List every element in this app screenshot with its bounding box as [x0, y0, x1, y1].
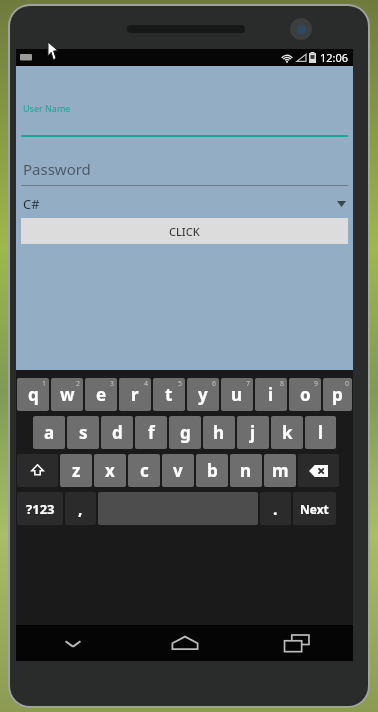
button[interactable]: t — [153, 378, 185, 411]
staticText: p — [332, 383, 343, 406]
staticText: q — [28, 383, 39, 406]
staticText: j — [250, 421, 256, 444]
staticText: Password — [23, 159, 91, 179]
staticText: z — [72, 459, 81, 482]
staticText: n — [240, 459, 252, 482]
staticText: u — [231, 383, 243, 406]
button[interactable]: C# — [23, 192, 346, 216]
button[interactable]: k — [271, 416, 303, 449]
staticText: t — [165, 383, 173, 406]
staticText: o — [300, 383, 311, 406]
button[interactable]: j — [237, 416, 269, 449]
staticText: y — [198, 383, 208, 406]
staticText: 5 — [178, 379, 183, 389]
button[interactable]: Shift — [17, 454, 58, 487]
staticText: m — [272, 459, 289, 482]
staticText: i — [268, 383, 274, 406]
button[interactable]: d — [101, 416, 133, 449]
staticText: k — [282, 421, 293, 444]
button[interactable]: Recent apps — [241, 625, 353, 661]
staticText: w — [60, 383, 75, 406]
staticText: c — [140, 459, 149, 482]
staticText: . — [273, 498, 278, 520]
button[interactable]: Home — [129, 625, 241, 661]
staticText: Next — [300, 501, 329, 517]
staticText: r — [131, 383, 139, 406]
button[interactable]: y — [187, 378, 219, 411]
staticText: 4 — [144, 379, 149, 389]
staticText: 6 — [212, 379, 217, 389]
staticText: CLICK — [169, 224, 200, 239]
button[interactable]: e — [85, 378, 117, 411]
staticText: C# — [23, 195, 40, 213]
staticText: 3 — [110, 379, 115, 389]
staticText: User Name — [23, 102, 71, 114]
button[interactable]: r — [119, 378, 151, 411]
button[interactable]: p — [323, 378, 352, 411]
staticText: s — [79, 421, 88, 444]
button[interactable]: z — [60, 454, 92, 487]
staticText: ?123 — [26, 500, 55, 518]
button[interactable]: Next — [293, 492, 336, 525]
staticText: 8 — [280, 379, 285, 389]
button[interactable]: CLICK — [21, 218, 348, 244]
button[interactable]: u — [221, 378, 253, 411]
staticText: l — [318, 421, 324, 444]
button[interactable]: Backspace — [298, 454, 339, 487]
button[interactable]: g — [169, 416, 201, 449]
button[interactable]: x — [94, 454, 126, 487]
button[interactable]: n — [230, 454, 262, 487]
button[interactable]: c — [128, 454, 160, 487]
button[interactable]: b — [196, 454, 228, 487]
button[interactable]: i — [255, 378, 287, 411]
staticText: , — [78, 498, 83, 520]
button[interactable]: h — [203, 416, 235, 449]
staticText: 9 — [314, 379, 319, 389]
button[interactable]: , — [65, 492, 96, 525]
button[interactable]: v — [162, 454, 194, 487]
button[interactable]: m — [264, 454, 296, 487]
staticText: h — [213, 421, 225, 444]
button[interactable]: o — [289, 378, 321, 411]
staticText: a — [44, 421, 55, 444]
staticText: 2 — [76, 379, 81, 389]
button[interactable]: q — [17, 378, 49, 411]
staticText: e — [96, 383, 107, 406]
staticText: d — [112, 421, 123, 444]
button[interactable]: s — [67, 416, 99, 449]
button[interactable]: l — [305, 416, 336, 449]
button[interactable]: Hide keyboard — [16, 625, 129, 661]
button[interactable]: f — [135, 416, 167, 449]
staticText: g — [180, 421, 191, 444]
button[interactable]: . — [260, 492, 291, 525]
button[interactable]: w — [51, 378, 83, 411]
button[interactable]: a — [33, 416, 65, 449]
button[interactable]: ?123 — [17, 492, 63, 525]
staticText: v — [173, 459, 183, 482]
staticText: 1 — [42, 379, 47, 389]
staticText: 12:06 — [320, 50, 349, 65]
staticText: x — [105, 459, 115, 482]
staticText: b — [207, 459, 218, 482]
staticText: 0 — [345, 379, 350, 389]
staticText: 7 — [246, 379, 251, 389]
staticText: f — [148, 421, 155, 444]
